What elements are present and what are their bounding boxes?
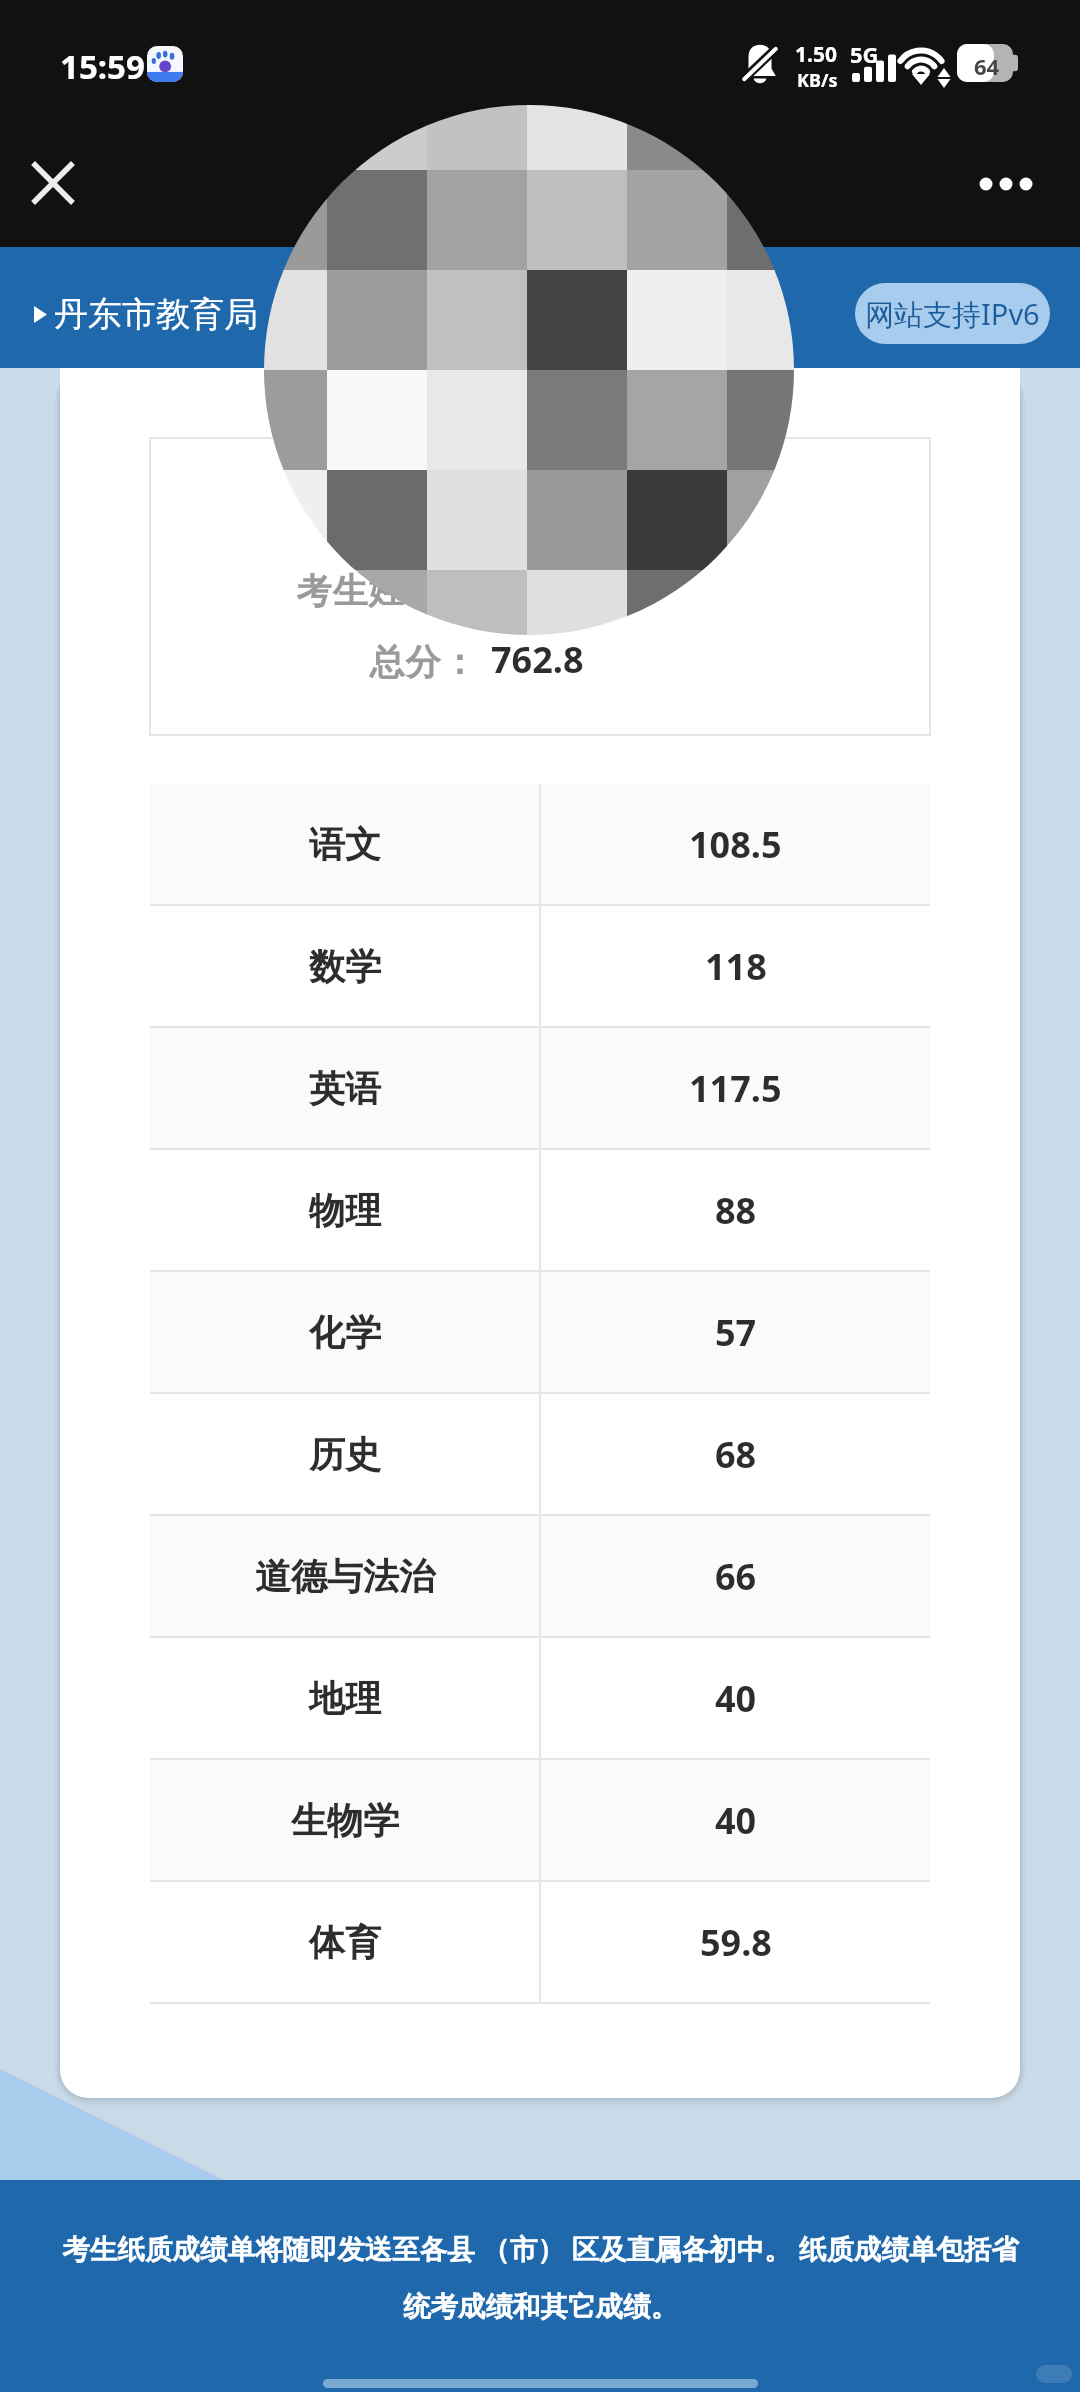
button[interactable]: 地理 (150, 1638, 930, 1758)
staticText: 体育 (309, 1920, 381, 1965)
button[interactable]: More options (963, 150, 1049, 218)
staticText: 64 (974, 51, 1000, 81)
staticText: 118 (705, 942, 767, 991)
button[interactable]: 化学 (150, 1272, 930, 1392)
button[interactable]: 道德与法治 (150, 1516, 930, 1636)
staticText: 地理 (309, 1676, 381, 1721)
staticText: 网站支持IPv6 (865, 294, 1040, 334)
button[interactable]: 物理 (150, 1150, 930, 1270)
button[interactable]: 体育 (150, 1882, 930, 2002)
staticText: 66 (715, 1552, 757, 1601)
staticText: 统考成绩和其它成绩。 (403, 2290, 678, 2325)
staticText: 5G (850, 39, 879, 69)
button[interactable]: 生物学 (150, 1760, 930, 1880)
staticText: 数学 (309, 944, 381, 989)
staticText: 1.50 (795, 40, 837, 69)
button[interactable]: 英语 (150, 1028, 930, 1148)
staticText: 生物学 (291, 1798, 399, 1843)
staticText: 57 (715, 1308, 757, 1357)
staticText: 88 (715, 1186, 757, 1235)
button[interactable]: 数学 (150, 906, 930, 1026)
staticText: 15:59 (60, 44, 145, 89)
button[interactable]: 网站支持IPv6 (855, 283, 1050, 344)
staticText: 历史 (309, 1432, 381, 1477)
staticText: 道德与法治 (255, 1554, 435, 1599)
button[interactable]: 语文 (150, 784, 930, 904)
staticText: 59.8 (700, 1918, 772, 1967)
staticText: 68 (715, 1430, 757, 1479)
staticText: 考生姓名： (296, 569, 476, 613)
staticText: 40 (715, 1674, 757, 1723)
staticText: 117.5 (689, 1064, 782, 1113)
staticText: 762.8 (491, 635, 584, 684)
staticText: 物理 (309, 1188, 381, 1233)
staticText: 丹东市教育局 (54, 293, 258, 336)
staticText: KB/s (797, 68, 838, 93)
staticText: 考生纸质成绩单将随即发送至各县 （市） 区及直属各初中。 纸质成绩单包括省 (62, 2230, 1019, 2268)
staticText: 总分： (369, 640, 477, 684)
staticText: 语文 (309, 822, 381, 867)
button[interactable]: Close (19, 149, 87, 217)
staticText: 40 (715, 1796, 757, 1845)
button[interactable]: 历史 (150, 1394, 930, 1514)
staticText: 108.5 (689, 820, 782, 869)
staticText: 英语 (309, 1066, 381, 1111)
staticText: 化学 (309, 1310, 381, 1355)
